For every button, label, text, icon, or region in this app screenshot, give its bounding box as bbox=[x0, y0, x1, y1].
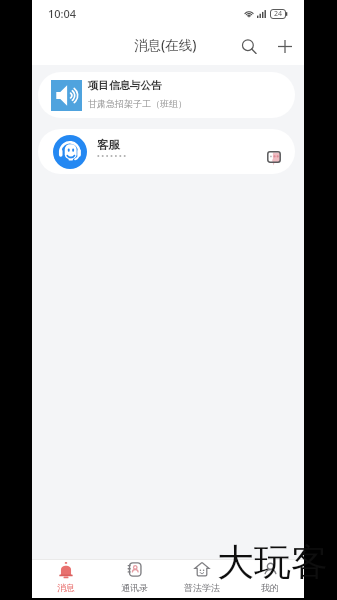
staticText: 普法学法 bbox=[184, 582, 220, 593]
button[interactable]: 普法学法 bbox=[168, 560, 236, 598]
button[interactable]: 消息 bbox=[32, 560, 100, 598]
staticText: 消息 bbox=[57, 582, 75, 593]
button[interactable]: 通讯录 bbox=[100, 560, 168, 598]
staticText: 我的 bbox=[261, 582, 279, 593]
button[interactable]: 项目信息与公告 bbox=[38, 72, 295, 118]
staticText: 客服 bbox=[97, 138, 120, 152]
staticText: 大玩客 bbox=[217, 539, 328, 586]
button[interactable]: Search bbox=[233, 27, 265, 65]
staticText: 消息(在线) bbox=[134, 36, 197, 54]
staticText: 项目信息与公告 bbox=[88, 79, 162, 92]
button[interactable]: Add bbox=[269, 27, 301, 65]
button[interactable]: 客服 bbox=[38, 129, 295, 174]
staticText: 10:04 bbox=[48, 6, 77, 21]
staticText: 甘肃急招架子工（班组） bbox=[88, 98, 187, 109]
staticText: 24 bbox=[274, 9, 283, 19]
button[interactable]: 我的 bbox=[236, 560, 304, 598]
staticText: 通讯录 bbox=[121, 582, 148, 593]
